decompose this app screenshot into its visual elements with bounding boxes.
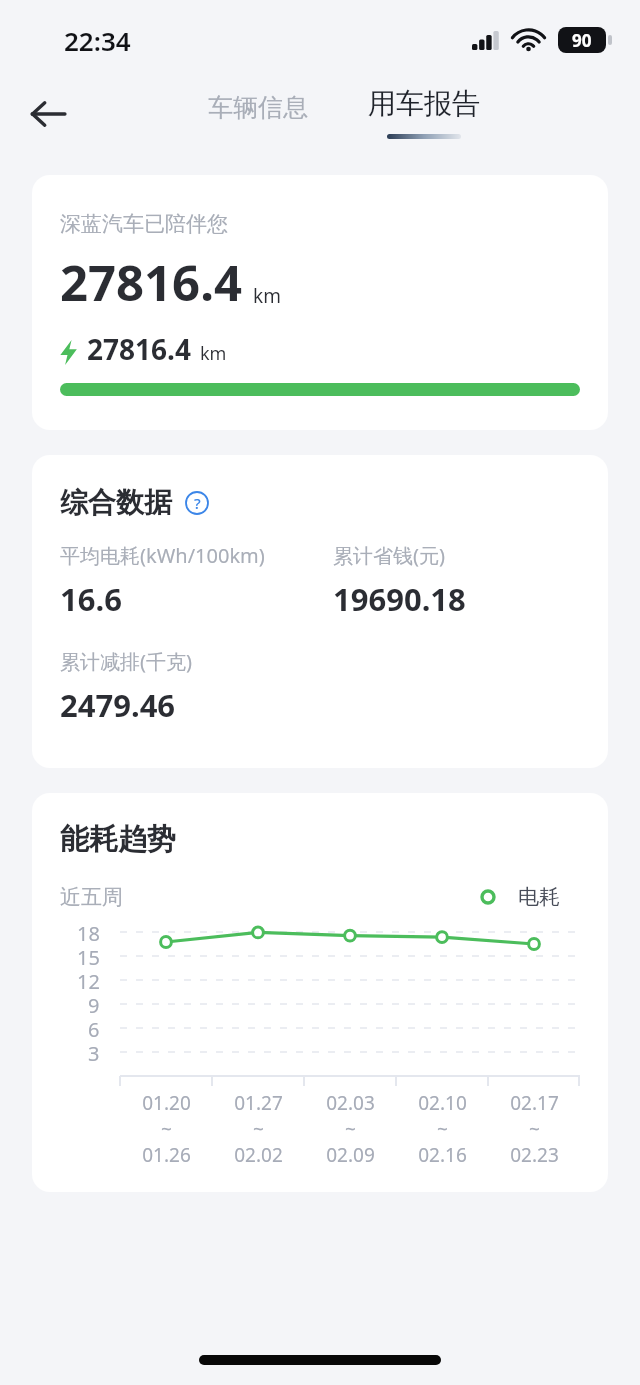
staticText: 用车报告 bbox=[368, 86, 480, 121]
button[interactable]: 深蓝汽车已陪伴您 bbox=[32, 175, 608, 430]
button[interactable]: 用车报告 bbox=[356, 82, 492, 143]
staticText: 累计省钱(元) bbox=[333, 542, 445, 569]
staticText: 15 bbox=[77, 944, 100, 968]
staticText: 02.02 bbox=[234, 1142, 283, 1168]
staticText: 01.26 bbox=[142, 1142, 191, 1168]
staticText: 19690.18 bbox=[333, 578, 466, 620]
staticText: 16.6 bbox=[60, 578, 122, 620]
staticText: 22:34 bbox=[64, 23, 131, 58]
staticText: 01.20 bbox=[142, 1090, 191, 1116]
staticText: 3 bbox=[88, 1040, 100, 1064]
staticText: 累计减排(千克) bbox=[60, 648, 192, 675]
button[interactable]: Help bbox=[182, 488, 212, 518]
button[interactable]: 能耗趋势 bbox=[32, 793, 608, 1192]
staticText: 02.03 bbox=[326, 1090, 375, 1116]
staticText: 02.10 bbox=[418, 1090, 467, 1116]
staticText: ~ bbox=[345, 1116, 356, 1142]
staticText: 9 bbox=[88, 992, 100, 1016]
staticText: 27816.4 bbox=[60, 249, 242, 316]
staticText: 6 bbox=[88, 1016, 100, 1040]
staticText: 12 bbox=[77, 968, 100, 992]
staticText: 近五周 bbox=[60, 884, 123, 910]
staticText: 2479.46 bbox=[60, 684, 176, 726]
staticText: ~ bbox=[161, 1116, 172, 1142]
staticText: 电耗 bbox=[518, 884, 560, 910]
staticText: 车辆信息 bbox=[208, 92, 308, 123]
staticText: 深蓝汽车已陪伴您 bbox=[60, 211, 228, 237]
staticText: 平均电耗(kWh/100km) bbox=[60, 542, 265, 569]
staticText: 90 bbox=[572, 29, 592, 52]
staticText: 能耗趋势 bbox=[60, 821, 176, 858]
staticText: 02.17 bbox=[510, 1090, 559, 1116]
staticText: 02.09 bbox=[326, 1142, 375, 1168]
staticText: ~ bbox=[437, 1116, 448, 1142]
button[interactable]: 车辆信息 bbox=[196, 82, 320, 125]
staticText: 27816.4 bbox=[87, 330, 191, 368]
staticText: km bbox=[253, 283, 281, 309]
staticText: 02.23 bbox=[510, 1142, 559, 1168]
staticText: ~ bbox=[529, 1116, 540, 1142]
staticText: ~ bbox=[253, 1116, 264, 1142]
staticText: 综合数据 bbox=[60, 485, 172, 520]
staticText: 02.16 bbox=[418, 1142, 467, 1168]
button[interactable]: 电耗 bbox=[476, 880, 564, 914]
button[interactable]: 综合数据 bbox=[32, 455, 608, 768]
staticText: km bbox=[200, 341, 227, 366]
staticText: ? bbox=[194, 493, 201, 513]
staticText: 18 bbox=[77, 920, 100, 944]
button[interactable]: Back bbox=[16, 82, 80, 146]
staticText: 01.27 bbox=[234, 1090, 283, 1116]
